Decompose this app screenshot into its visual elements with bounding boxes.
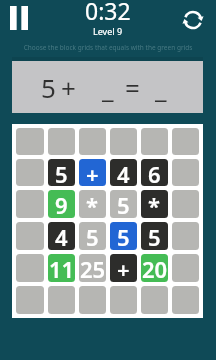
staticText: 0:32 <box>85 0 131 26</box>
staticText: 25 <box>80 254 106 282</box>
button[interactable] <box>16 222 44 250</box>
staticText: 4 <box>117 159 130 186</box>
button[interactable] <box>172 159 199 186</box>
staticText: _ <box>102 70 114 105</box>
staticText: * <box>148 190 161 218</box>
button[interactable] <box>172 286 199 314</box>
button[interactable] <box>110 286 137 314</box>
button[interactable]: 5 <box>48 159 75 186</box>
staticText: Choose the block grids that equals with … <box>5 43 211 52</box>
button[interactable]: 5 <box>12 61 203 113</box>
staticText: Level 9 <box>93 25 123 37</box>
staticText: 5 <box>117 190 130 218</box>
staticText: 5 <box>117 222 130 250</box>
button[interactable]: Restart <box>177 4 209 36</box>
button[interactable] <box>16 254 44 282</box>
button[interactable] <box>48 128 75 155</box>
button[interactable] <box>172 128 199 155</box>
staticText: = <box>125 70 140 105</box>
staticText: 4 <box>55 222 68 250</box>
button[interactable]: 4 <box>48 222 75 250</box>
staticText: _ <box>155 70 167 105</box>
button[interactable] <box>110 128 137 155</box>
staticText: 5 <box>86 222 99 250</box>
button[interactable]: 4 <box>110 159 137 186</box>
button[interactable] <box>16 159 44 186</box>
button[interactable]: Pause <box>3 2 35 34</box>
button[interactable] <box>16 286 44 314</box>
button[interactable] <box>48 286 75 314</box>
button[interactable] <box>16 190 44 218</box>
button[interactable] <box>172 222 199 250</box>
staticText: + <box>117 254 130 282</box>
button[interactable]: 25 <box>79 254 106 282</box>
staticText: 11 <box>49 254 75 282</box>
button[interactable]: 9 <box>48 190 75 218</box>
staticText: + <box>86 159 99 186</box>
button[interactable]: + <box>79 159 106 186</box>
button[interactable] <box>172 190 199 218</box>
button[interactable] <box>79 286 106 314</box>
button[interactable]: * <box>79 190 106 218</box>
button[interactable]: 5 <box>141 222 168 250</box>
button[interactable] <box>79 128 106 155</box>
staticText: 6 <box>148 159 161 186</box>
staticText: 5 <box>148 222 161 250</box>
button[interactable] <box>141 128 168 155</box>
staticText: 20 <box>142 254 168 282</box>
staticText: 9 <box>55 190 68 218</box>
button[interactable]: 5 <box>79 222 106 250</box>
button[interactable]: 5 <box>110 222 137 250</box>
staticText: * <box>86 190 99 218</box>
staticText: 5 <box>55 159 68 186</box>
button[interactable] <box>141 286 168 314</box>
button[interactable]: * <box>141 190 168 218</box>
button[interactable]: 6 <box>141 159 168 186</box>
staticText: + <box>61 70 76 105</box>
button[interactable]: 5 <box>110 190 137 218</box>
staticText: 5 <box>41 70 56 105</box>
button[interactable]: 20 <box>141 254 168 282</box>
button[interactable]: + <box>110 254 137 282</box>
button[interactable] <box>16 128 44 155</box>
button[interactable] <box>172 254 199 282</box>
button[interactable]: 11 <box>48 254 75 282</box>
